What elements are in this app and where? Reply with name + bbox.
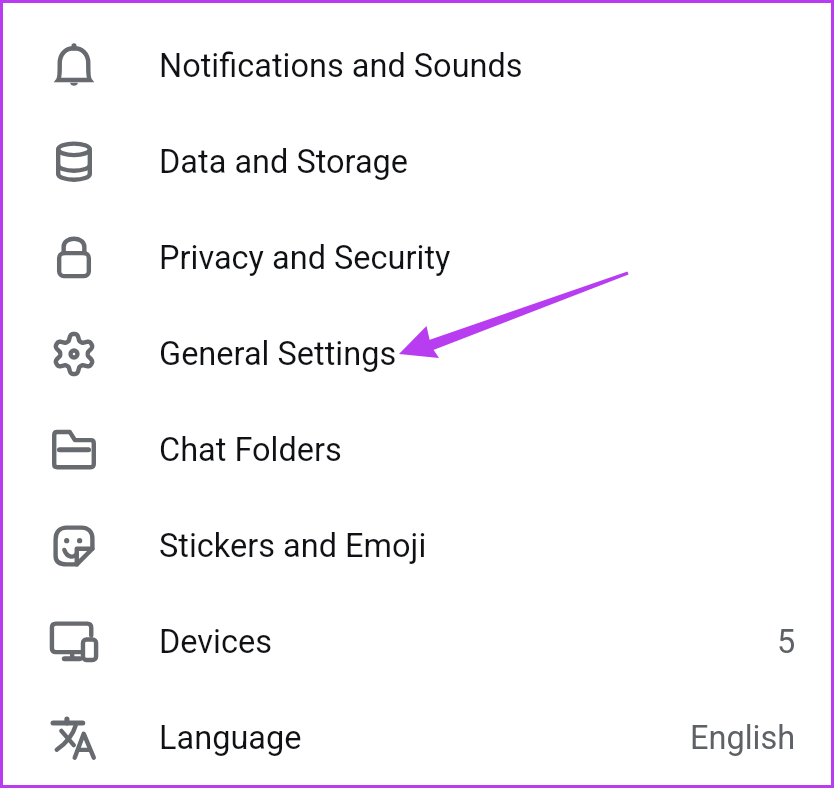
- other: General Settings: [51, 331, 97, 377]
- other: Chat Folders: [51, 427, 97, 473]
- other: Notifications and Sounds: [51, 43, 97, 89]
- button[interactable]: Devices: [3, 594, 831, 690]
- staticText: General Settings: [159, 335, 397, 373]
- staticText: Data and Storage: [159, 143, 409, 181]
- button[interactable]: Data and Storage: [3, 114, 831, 210]
- other: Privacy and Security: [51, 235, 97, 281]
- other: Data and Storage: [51, 139, 97, 185]
- other: Stickers and Emoji: [51, 523, 97, 569]
- staticText: Privacy and Security: [159, 239, 451, 277]
- staticText: Notifications and Sounds: [159, 47, 523, 85]
- button[interactable]: Notifications and Sounds: [3, 18, 831, 114]
- staticText: Chat Folders: [159, 431, 342, 469]
- button[interactable]: Privacy and Security: [3, 210, 831, 306]
- button[interactable]: Language: [3, 690, 831, 785]
- staticText: English: [690, 719, 796, 757]
- other: Devices: [51, 619, 97, 665]
- button[interactable]: Stickers and Emoji: [3, 498, 831, 594]
- other: Language: [51, 715, 97, 761]
- staticText: Devices: [159, 623, 273, 661]
- staticText: Stickers and Emoji: [159, 527, 427, 565]
- button[interactable]: General Settings: [3, 306, 831, 402]
- button[interactable]: Chat Folders: [3, 402, 831, 498]
- staticText: 5: [777, 623, 796, 661]
- staticText: Language: [159, 719, 302, 757]
